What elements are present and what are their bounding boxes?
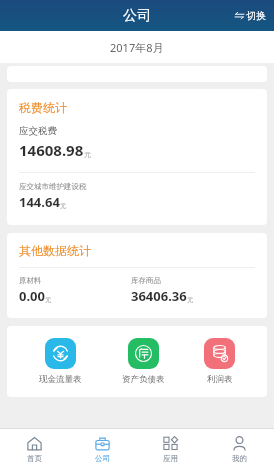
button[interactable]: 我的 bbox=[205, 429, 274, 470]
staticText: 0.00 bbox=[19, 287, 45, 305]
staticText: 资产负债表 bbox=[122, 374, 165, 385]
staticText: 利润表 bbox=[207, 374, 233, 385]
button[interactable]: 公司 bbox=[68, 429, 136, 470]
staticText: 应用 bbox=[163, 454, 178, 463]
staticText: 我的 bbox=[232, 454, 247, 463]
staticText: 现金流量表 bbox=[39, 374, 82, 385]
staticText: 元 bbox=[84, 150, 91, 159]
staticText: 元 bbox=[60, 202, 67, 210]
staticText: 144.64 bbox=[19, 193, 60, 211]
staticText: 应交城市维护建设税 bbox=[19, 182, 87, 191]
staticText: 切换 bbox=[246, 9, 266, 22]
other: Switch company bbox=[235, 11, 244, 20]
staticText: 14608.98 bbox=[19, 140, 84, 160]
staticText: 公司 bbox=[95, 454, 110, 463]
button[interactable]: Switch company bbox=[232, 5, 269, 26]
staticText: 其他数据统计 bbox=[19, 243, 91, 258]
button[interactable]: 2017年8月 bbox=[0, 31, 274, 63]
staticText: 应交税费 bbox=[19, 125, 57, 137]
button[interactable]: 应用 bbox=[136, 429, 205, 470]
staticText: 税费统计 bbox=[19, 100, 67, 115]
staticText: 36406.36 bbox=[131, 287, 187, 305]
staticText: 原材料 bbox=[19, 276, 42, 285]
staticText: 2017年8月 bbox=[110, 40, 164, 55]
staticText: 首页 bbox=[27, 454, 42, 463]
staticText: 公司 bbox=[123, 7, 151, 25]
button[interactable]: 利润表 bbox=[197, 337, 242, 386]
staticText: 元 bbox=[45, 296, 52, 304]
button[interactable]: 首页 bbox=[0, 429, 68, 470]
button[interactable]: 资产负债表 bbox=[115, 337, 172, 386]
button[interactable]: 现金流量表 bbox=[32, 337, 89, 386]
button[interactable]: 其他数据统计 bbox=[7, 233, 267, 318]
staticText: 库存商品 bbox=[131, 276, 161, 285]
staticText: 元 bbox=[187, 296, 194, 304]
button[interactable]: 税费统计 bbox=[7, 89, 267, 225]
